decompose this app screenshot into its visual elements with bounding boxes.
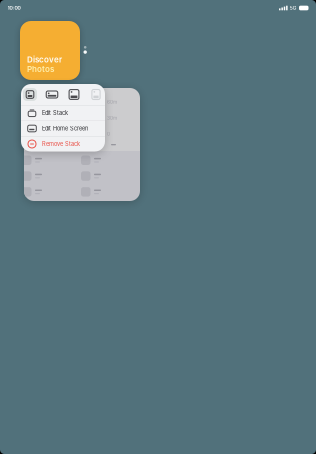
button[interactable]: Remove Stack — [21, 136, 105, 151]
button[interactable]: Small widget — [23, 88, 37, 101]
staticText: Discover — [27, 55, 62, 64]
staticText: 0 — [107, 131, 110, 137]
staticText: 10:00 — [7, 5, 20, 11]
button[interactable]: Extra large widget — [89, 88, 103, 101]
staticText: Edit Home Screen — [42, 125, 88, 132]
button[interactable]: Edit Stack — [21, 105, 105, 120]
staticText: Remove Stack — [42, 141, 80, 147]
staticText: 60m — [107, 99, 117, 105]
button[interactable]: Medium widget — [45, 88, 59, 101]
staticText: 30m — [107, 115, 117, 121]
staticText: 5G — [290, 5, 297, 11]
staticText: Edit Stack — [42, 110, 68, 116]
button[interactable]: Large widget — [67, 88, 81, 101]
button[interactable]: Edit Home Screen — [21, 121, 105, 136]
staticText: Screen Time — [32, 92, 72, 99]
button[interactable]: Discover — [20, 21, 80, 80]
staticText: Photos — [27, 64, 54, 74]
